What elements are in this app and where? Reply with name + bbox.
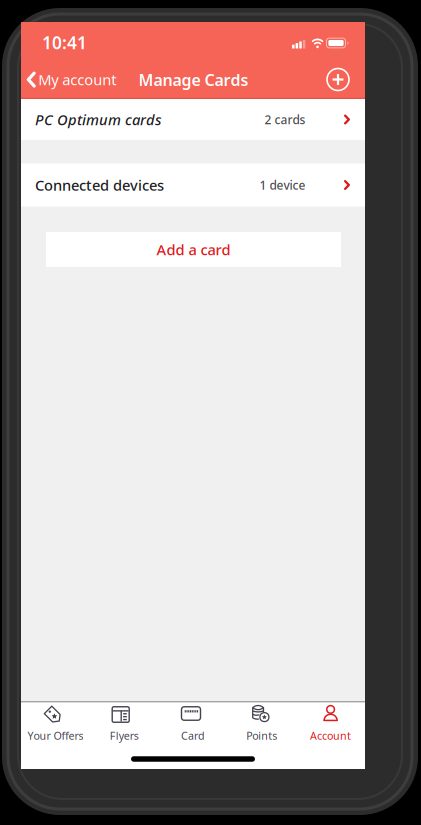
button[interactable]: Your Offers: [21, 701, 90, 747]
staticText: 10:41: [42, 31, 87, 54]
staticText: Account: [310, 728, 351, 743]
button[interactable]: My account: [27, 70, 116, 89]
button[interactable]: Card: [159, 701, 227, 747]
staticText: My account: [38, 70, 116, 89]
staticText: Card: [181, 728, 205, 743]
staticText: Flyers: [110, 728, 139, 743]
staticText: Connected devices: [35, 175, 164, 195]
button[interactable]: Points: [227, 701, 296, 747]
staticText: 2 cards: [264, 111, 305, 127]
button[interactable]: PC Optimum cards: [21, 99, 365, 140]
staticText: Add a card: [156, 240, 230, 259]
staticText: Points: [246, 728, 277, 743]
staticText: Manage Cards: [138, 69, 248, 90]
button[interactable]: Add a card: [46, 232, 341, 267]
button[interactable]: Add: [327, 68, 349, 90]
button[interactable]: Account: [296, 701, 365, 747]
staticText: PC Optimum cards: [35, 110, 162, 129]
staticText: 1 device: [259, 177, 305, 193]
button[interactable]: Flyers: [90, 701, 159, 747]
staticText: Your Offers: [27, 728, 83, 743]
button[interactable]: Connected devices: [21, 163, 365, 206]
